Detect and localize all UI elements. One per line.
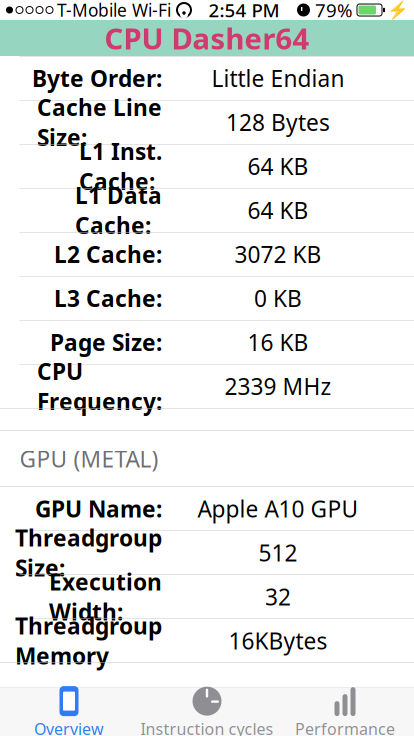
- staticText: 16 KB: [247, 327, 308, 357]
- button[interactable]: Overview: [0, 681, 138, 736]
- staticText: Overview: [34, 718, 104, 736]
- staticText: T-Mobile Wi-Fi: [57, 0, 171, 21]
- staticText: 0 KB: [254, 283, 302, 313]
- button[interactable]: Instruction cycles: [138, 681, 276, 736]
- staticText: CPU Dasher64: [104, 18, 309, 57]
- staticText: CPU Frequency:: [37, 356, 162, 416]
- staticText: Execution Width:: [49, 567, 162, 627]
- staticText: Apple A10 GPU: [197, 494, 358, 524]
- staticText: ⚡: [387, 0, 409, 20]
- staticText: 64 KB: [247, 195, 308, 225]
- staticText: 128 Bytes: [226, 107, 330, 137]
- staticText: 64 KB: [247, 151, 308, 181]
- staticText: 16KBytes: [228, 626, 327, 656]
- staticText: Instruction cycles: [140, 718, 273, 736]
- staticText: 79%: [315, 0, 353, 22]
- staticText: GPU Name:: [35, 494, 162, 524]
- staticText: Threadgroup Size:: [15, 523, 162, 583]
- staticText: L1 Data Cache:: [75, 180, 162, 240]
- staticText: GPU (METAL): [19, 444, 158, 474]
- staticText: L3 Cache:: [54, 283, 162, 313]
- staticText: 32: [265, 582, 291, 612]
- staticText: 512: [258, 538, 297, 568]
- staticText: Page Size:: [50, 327, 162, 357]
- staticText: 3072 KB: [234, 239, 321, 269]
- button[interactable]: Performance: [276, 681, 414, 736]
- staticText: Byte Order:: [32, 63, 162, 93]
- staticText: Performance: [295, 718, 395, 736]
- staticText: L1 Inst. Cache:: [79, 136, 162, 196]
- staticText: 2:54 PM: [208, 0, 279, 22]
- staticText: Little Endian: [211, 63, 344, 93]
- staticText: 2339 MHz: [224, 371, 331, 401]
- staticText: Threadgroup Memory: [15, 611, 162, 671]
- staticText: L2 Cache:: [54, 239, 162, 269]
- staticText: Cache Line Size:: [37, 92, 162, 152]
